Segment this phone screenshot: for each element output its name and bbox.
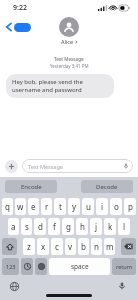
- button[interactable]: Alice: [55, 17, 83, 45]
- button[interactable]: d: [34, 218, 46, 235]
- staticText: q: [5, 201, 10, 212]
- staticText: y: [72, 201, 77, 212]
- button[interactable]: y: [68, 198, 80, 215]
- staticText: Encode: [21, 183, 42, 191]
- staticText: g: [66, 221, 71, 232]
- button[interactable]: Decode: [81, 180, 133, 193]
- staticText: e: [31, 201, 36, 212]
- button[interactable]: space: [49, 258, 110, 275]
- staticText: z: [27, 241, 31, 252]
- button[interactable]: Text Message: [22, 159, 133, 173]
- button[interactable]: c: [51, 238, 63, 255]
- other: Record audio: [123, 163, 129, 169]
- staticText: v: [68, 241, 73, 252]
- button[interactable]: m: [104, 238, 115, 255]
- staticText: u: [86, 201, 91, 212]
- staticText: o: [114, 201, 119, 212]
- staticText: return: [116, 263, 133, 270]
- staticText: h: [80, 221, 85, 232]
- button[interactable]: Delete: [121, 238, 136, 255]
- staticText: w: [17, 201, 24, 212]
- staticText: Alice: [61, 38, 74, 45]
- staticText: s: [25, 221, 29, 232]
- button[interactable]: r: [41, 198, 52, 215]
- button[interactable]: z: [23, 238, 35, 255]
- staticText: p: [128, 201, 133, 212]
- staticText: b: [81, 241, 86, 252]
- staticText: m: [106, 241, 114, 252]
- button[interactable]: l: [118, 218, 130, 235]
- staticText: 9:22: [13, 3, 27, 13]
- button[interactable]: s: [21, 218, 32, 235]
- button[interactable]: Change keyboard: [8, 280, 20, 292]
- button[interactable]: return: [112, 258, 136, 275]
- staticText: space: [71, 262, 89, 271]
- button[interactable]: u: [82, 198, 94, 215]
- button[interactable]: x: [37, 238, 49, 255]
- staticText: i: [101, 201, 104, 212]
- button[interactable]: b: [78, 238, 89, 255]
- button[interactable]: 123: [2, 258, 19, 275]
- button[interactable]: q: [2, 198, 13, 215]
- staticText: n: [94, 241, 99, 252]
- staticText: Text Message: [28, 163, 123, 170]
- staticText: c: [55, 241, 59, 252]
- button[interactable]: Back to Messages: [4, 20, 33, 34]
- staticText: d: [38, 221, 43, 232]
- staticText: l: [123, 221, 126, 232]
- button[interactable]: h: [76, 218, 88, 235]
- staticText: Yesterday 3:41 PM: [50, 63, 89, 69]
- button[interactable]: j: [90, 218, 102, 235]
- button[interactable]: Recents: [21, 258, 33, 275]
- button[interactable]: v: [65, 238, 76, 255]
- button[interactable]: o: [110, 198, 122, 215]
- button[interactable]: i: [96, 198, 108, 215]
- staticText: x: [41, 241, 46, 252]
- button[interactable]: Add attachment: [5, 160, 18, 173]
- button[interactable]: t: [54, 198, 66, 215]
- staticText: k: [108, 221, 113, 232]
- button[interactable]: w: [15, 198, 26, 215]
- staticText: Hey bob, please send the username and pa…: [12, 78, 108, 94]
- staticText: Text Message: [54, 56, 84, 62]
- staticText: t: [59, 201, 62, 212]
- staticText: a: [11, 221, 16, 232]
- button[interactable]: a: [8, 218, 19, 235]
- button[interactable]: k: [104, 218, 116, 235]
- staticText: j: [95, 221, 98, 232]
- button[interactable]: p: [124, 198, 136, 215]
- button[interactable]: Encode: [5, 180, 57, 193]
- button[interactable]: n: [91, 238, 102, 255]
- button[interactable]: f: [48, 218, 60, 235]
- button[interactable]: Shift: [2, 238, 17, 255]
- button[interactable]: Dictate: [116, 280, 128, 292]
- staticText: f: [53, 221, 56, 232]
- button[interactable]: g: [62, 218, 74, 235]
- staticText: 123: [6, 263, 16, 270]
- button[interactable]: Emoji: [35, 258, 47, 275]
- staticText: Decode: [96, 183, 118, 191]
- button[interactable]: Hey bob, please send the username and pa…: [6, 74, 114, 98]
- staticText: r: [45, 201, 49, 212]
- button[interactable]: e: [28, 198, 39, 215]
